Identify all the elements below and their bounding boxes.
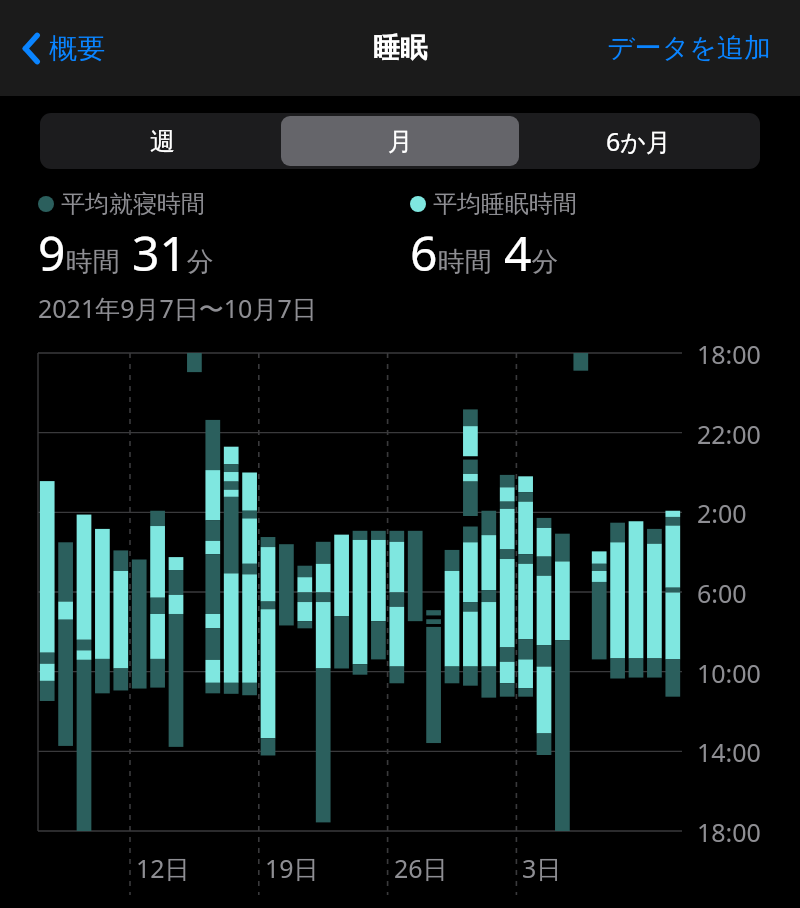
staticText: 18:00 (697, 337, 761, 371)
staticText: 2:00 (697, 496, 747, 530)
staticText: 週 (150, 126, 175, 157)
staticText: 6:00 (697, 576, 747, 610)
staticText: 6時間 4分 (410, 220, 559, 285)
staticText: 概要 (49, 31, 105, 66)
staticText: 3日 (522, 851, 562, 885)
staticText: 睡眠 (373, 31, 427, 65)
staticText: データを追加 (607, 31, 771, 65)
staticText: 18:00 (697, 815, 761, 849)
staticText: 22:00 (697, 417, 761, 451)
button[interactable]: データを追加 (602, 26, 776, 70)
button[interactable]: 6か月 (519, 116, 757, 166)
staticText: 2021年9月7日〜10月7日 (38, 291, 317, 325)
staticText: 26日 (394, 851, 448, 885)
button[interactable]: 週 (43, 116, 281, 166)
staticText: 19日 (265, 851, 319, 885)
staticText: 10:00 (697, 656, 761, 690)
staticText: 6か月 (606, 124, 671, 158)
button[interactable]: 月 (281, 116, 519, 166)
staticText: 平均睡眠時間 (433, 189, 577, 219)
staticText: 9時間 31分 (38, 220, 214, 285)
staticText: 14:00 (697, 735, 761, 769)
staticText: 月 (388, 126, 413, 157)
staticText: 平均就寝時間 (61, 189, 205, 219)
staticText: 12日 (136, 851, 190, 885)
button[interactable]: 概要 (16, 21, 111, 76)
